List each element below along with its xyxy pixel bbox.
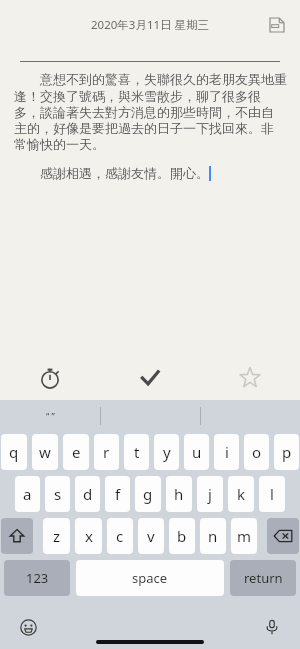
staticText: k bbox=[237, 484, 246, 504]
button[interactable]: d bbox=[75, 476, 100, 512]
button[interactable]: m bbox=[231, 518, 257, 554]
button[interactable]: o bbox=[244, 434, 269, 470]
staticText: 逢！交換了號碼，與米雪散步，聊了很多很 bbox=[14, 88, 261, 104]
staticText: space bbox=[132, 569, 168, 587]
staticText: b bbox=[177, 526, 187, 546]
staticText: d bbox=[83, 484, 93, 504]
staticText: n bbox=[208, 526, 218, 546]
staticText: z bbox=[53, 526, 61, 546]
staticText: o bbox=[252, 442, 262, 462]
staticText: return bbox=[244, 569, 283, 587]
button[interactable]: Backspace bbox=[267, 518, 299, 554]
button[interactable]: “ ” bbox=[0, 400, 100, 431]
staticText: p bbox=[282, 442, 292, 462]
staticText: m bbox=[237, 526, 252, 546]
staticText: 意想不到的驚喜，失聯很久的老朋友異地重 bbox=[14, 70, 287, 88]
button[interactable]: Shift bbox=[1, 518, 33, 554]
staticText: w bbox=[39, 442, 51, 462]
button[interactable]: l bbox=[259, 476, 285, 512]
button[interactable]: z bbox=[43, 518, 70, 554]
button[interactable]: p bbox=[274, 434, 299, 470]
staticText: g bbox=[143, 484, 153, 504]
button[interactable]: r bbox=[94, 434, 119, 470]
staticText: f bbox=[115, 484, 121, 504]
staticText: y bbox=[163, 442, 171, 462]
button[interactable]: n bbox=[200, 518, 226, 554]
button[interactable]: 123 bbox=[4, 560, 70, 596]
button[interactable]: s bbox=[45, 476, 70, 512]
staticText: 123 bbox=[26, 569, 49, 587]
staticText: x bbox=[85, 526, 93, 546]
button[interactable]: Favorite bbox=[200, 356, 300, 400]
staticText: 多，談論著失去對方消息的那些時間，不由自 bbox=[14, 104, 274, 120]
button[interactable]: Emoji bbox=[14, 613, 42, 641]
button[interactable]: t bbox=[124, 434, 149, 470]
staticText: 2020年3月11日 星期三 bbox=[91, 17, 210, 33]
button[interactable]: e bbox=[63, 434, 89, 470]
staticText: v bbox=[147, 526, 155, 546]
staticText: a bbox=[23, 484, 32, 504]
staticText: 感謝相遇，感謝友情。開心。 bbox=[14, 164, 209, 182]
staticText: “ ” bbox=[46, 410, 55, 422]
button[interactable]: Done bbox=[100, 356, 200, 400]
button[interactable]: x bbox=[75, 518, 102, 554]
button[interactable]: c bbox=[107, 518, 133, 554]
button[interactable]: Dictation bbox=[258, 613, 286, 641]
button[interactable]: g bbox=[135, 476, 161, 512]
staticText: s bbox=[54, 484, 62, 504]
button[interactable]: return bbox=[230, 560, 296, 596]
button[interactable]: b bbox=[169, 518, 195, 554]
button[interactable]: Timer bbox=[0, 356, 100, 400]
button[interactable]: u bbox=[184, 434, 209, 470]
staticText: j bbox=[208, 484, 212, 504]
staticText: c bbox=[116, 526, 124, 546]
button[interactable]: f bbox=[105, 476, 130, 512]
staticText: i bbox=[225, 442, 229, 462]
button[interactable]: h bbox=[166, 476, 192, 512]
button[interactable]: v bbox=[138, 518, 164, 554]
button[interactable]: j bbox=[197, 476, 223, 512]
staticText: u bbox=[192, 442, 202, 462]
staticText: l bbox=[270, 484, 274, 504]
button[interactable]: a bbox=[15, 476, 40, 512]
staticText: e bbox=[72, 442, 81, 462]
staticText: t bbox=[134, 442, 140, 462]
staticText: 常愉快的一天。 bbox=[14, 136, 105, 152]
button[interactable]: k bbox=[228, 476, 254, 512]
button[interactable]: i bbox=[214, 434, 239, 470]
staticText: h bbox=[174, 484, 184, 504]
button[interactable]: space bbox=[76, 560, 224, 596]
button[interactable]: y bbox=[154, 434, 179, 470]
button[interactable]: w bbox=[32, 434, 58, 470]
staticText: 主的，好像是要把過去的日子一下找回來。非 bbox=[14, 120, 274, 136]
staticText: q bbox=[9, 442, 19, 462]
button[interactable]: q bbox=[1, 434, 27, 470]
staticText: r bbox=[103, 442, 110, 462]
button[interactable]: Document bbox=[264, 12, 290, 38]
